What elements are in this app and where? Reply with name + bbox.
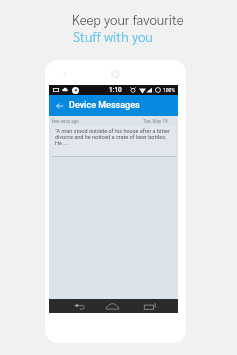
- staticText: Device Messages: [69, 100, 140, 111]
- button[interactable]: Recent apps: [141, 299, 159, 313]
- staticText: "A man stood outside of his house after …: [55, 128, 173, 146]
- staticText: Keep your favourite: [72, 11, 184, 29]
- button[interactable]: "A man stood outside of his house after …: [52, 126, 176, 157]
- staticText: 100%: [163, 87, 176, 93]
- staticText: few secs ago: [52, 119, 79, 124]
- button[interactable]: Back: [70, 299, 88, 313]
- staticText: Tue, May 19: [143, 119, 168, 124]
- staticText: 1:10: [109, 86, 122, 94]
- staticText: Stuff with you: [73, 28, 153, 46]
- button[interactable]: Home: [103, 299, 121, 313]
- button[interactable]: Back: [52, 98, 68, 114]
